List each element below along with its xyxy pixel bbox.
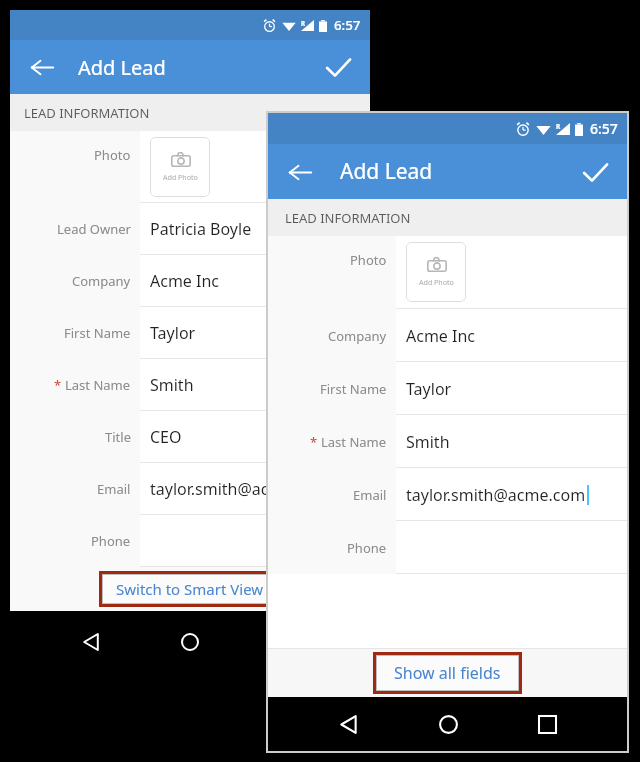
button[interactable]: Phone: [10, 515, 370, 567]
staticText: Title: [105, 428, 131, 446]
button[interactable]: Phone: [268, 521, 627, 574]
button[interactable]: First Name: [268, 362, 627, 415]
staticText: Smith: [150, 374, 194, 396]
button[interactable]: Home: [429, 705, 467, 743]
staticText: Taylor: [406, 378, 452, 400]
staticText: Photo: [350, 251, 387, 269]
staticText: Lead Owner: [57, 220, 131, 238]
button[interactable]: Company: [268, 309, 627, 362]
staticText: 6:57: [590, 119, 618, 138]
staticText: Switch to Smart View: [116, 579, 264, 599]
staticText: Phone: [347, 539, 387, 557]
button[interactable]: Navigate up: [281, 153, 319, 191]
staticText: Add Photo: [419, 277, 454, 287]
staticText: Acme Inc: [150, 270, 220, 292]
button[interactable]: Home: [172, 624, 208, 660]
staticText: Add Lead: [340, 157, 433, 186]
staticText: 6:57: [334, 16, 361, 34]
button[interactable]: Back: [73, 624, 109, 660]
button[interactable]: Title: [10, 411, 370, 463]
staticText: Last Name: [321, 433, 387, 451]
staticText: R: [301, 19, 306, 27]
button[interactable]: Save: [319, 48, 357, 86]
button[interactable]: Add Photo: [406, 242, 466, 302]
staticText: Taylor: [150, 322, 196, 344]
staticText: Patricia Boyle: [150, 218, 252, 240]
staticText: Phone: [91, 532, 131, 550]
staticText: Last Name: [65, 376, 131, 394]
staticText: taylor.smith@acme.com: [150, 478, 330, 500]
staticText: LEAD INFORMATION: [285, 209, 411, 227]
button[interactable]: Back: [329, 705, 367, 743]
staticText: Company: [328, 327, 387, 345]
button[interactable]: Recents: [528, 705, 566, 743]
button[interactable]: *: [10, 359, 370, 411]
button[interactable]: First Name: [10, 307, 370, 359]
button[interactable]: Lead Owner: [10, 203, 370, 255]
staticText: Add Lead: [78, 54, 166, 81]
button[interactable]: Recents: [271, 624, 307, 660]
button[interactable]: Save: [576, 153, 614, 191]
staticText: Acme Inc: [406, 325, 476, 347]
staticText: Show all fields: [394, 662, 501, 684]
staticText: Add Photo: [163, 172, 198, 182]
staticText: Company: [72, 272, 131, 290]
staticText: Photo: [94, 146, 131, 164]
button[interactable]: *: [268, 415, 627, 468]
staticText: LEAD INFORMATION: [24, 104, 150, 122]
button[interactable]: Email: [268, 468, 627, 521]
staticText: taylor.smith@acme.com: [406, 484, 586, 506]
staticText: R: [556, 122, 561, 131]
button[interactable]: Email: [10, 463, 370, 515]
staticText: Email: [97, 480, 131, 498]
staticText: *: [54, 376, 62, 394]
staticText: *: [310, 433, 318, 451]
staticText: First Name: [64, 324, 131, 342]
button[interactable]: Company: [10, 255, 370, 307]
staticText: CEO: [150, 426, 182, 448]
staticText: First Name: [320, 380, 387, 398]
button[interactable]: Switch to Smart View: [102, 574, 278, 604]
button[interactable]: Add Photo: [150, 137, 210, 197]
staticText: Smith: [406, 431, 450, 453]
button[interactable]: Show all fields: [376, 655, 519, 691]
button[interactable]: Navigate up: [23, 48, 61, 86]
staticText: Email: [353, 486, 387, 504]
